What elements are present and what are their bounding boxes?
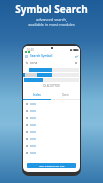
staticText: advanced search, available in most modul… [28, 17, 75, 27]
staticText: ADD SYMBOLS TO LIST [39, 164, 65, 167]
button[interactable] [26, 128, 77, 135]
button[interactable] [26, 149, 77, 156]
button[interactable] [26, 121, 77, 128]
staticText: Search Symbol [30, 54, 53, 58]
staticText: Index [33, 93, 41, 97]
staticText: XX ACCEPTOR [43, 84, 60, 88]
button[interactable] [26, 107, 77, 114]
button[interactable] [26, 142, 77, 149]
button[interactable] [26, 114, 77, 121]
staticText: Own [62, 93, 69, 97]
button[interactable] [26, 100, 77, 107]
other: Search [26, 62, 28, 64]
button[interactable]: ADD SYMBOLS TO LIST [27, 163, 76, 168]
button[interactable]: Confirm [75, 55, 78, 58]
staticText: sona [30, 61, 38, 65]
staticText: Symbol Search [15, 2, 88, 16]
staticText: 10:30 [27, 48, 34, 52]
button[interactable]: Own [51, 90, 80, 99]
button[interactable]: Index [23, 90, 51, 99]
button[interactable] [26, 135, 77, 142]
